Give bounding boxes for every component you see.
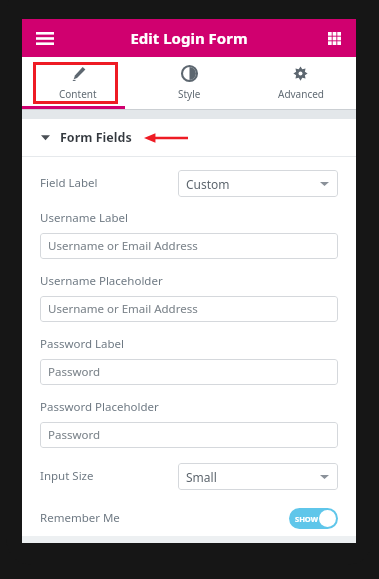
button[interactable]: Custom — [178, 170, 338, 197]
staticText: Username or Email Address — [48, 301, 198, 317]
staticText: Username Label — [40, 210, 128, 226]
staticText: Field Label — [40, 175, 98, 191]
button[interactable]: Form Fields — [22, 119, 356, 156]
button[interactable]: Menu — [30, 23, 60, 53]
staticText: Remember Me — [40, 510, 120, 526]
staticText: SHOW — [295, 514, 318, 524]
button[interactable]: Apps — [320, 24, 348, 52]
button[interactable]: Style — [134, 57, 245, 109]
staticText: Form Fields — [60, 129, 132, 146]
staticText: Password — [48, 427, 101, 443]
staticText: Password — [48, 364, 101, 380]
button[interactable]: Username or Email Address — [40, 296, 338, 322]
staticText: Small — [186, 469, 217, 485]
staticText: Style — [178, 87, 201, 101]
staticText: Input Size — [40, 468, 94, 484]
staticText: Edit Login Form — [130, 28, 248, 48]
button[interactable]: Advanced — [245, 57, 356, 109]
staticText: Content — [59, 87, 97, 101]
staticText: Password Placeholder — [40, 399, 159, 415]
staticText: Password Label — [40, 336, 125, 352]
button[interactable]: Username or Email Address — [40, 233, 338, 259]
button[interactable]: Password — [40, 422, 338, 448]
button[interactable]: Password — [40, 359, 338, 385]
staticText: Username or Email Address — [48, 238, 198, 254]
staticText: Username Placeholder — [40, 273, 163, 289]
staticText: Custom — [186, 176, 230, 192]
staticText: Advanced — [278, 87, 324, 101]
button[interactable]: Remember Me toggle, on — [289, 508, 338, 529]
button[interactable]: Content — [22, 57, 134, 109]
button[interactable]: Small — [178, 463, 338, 490]
